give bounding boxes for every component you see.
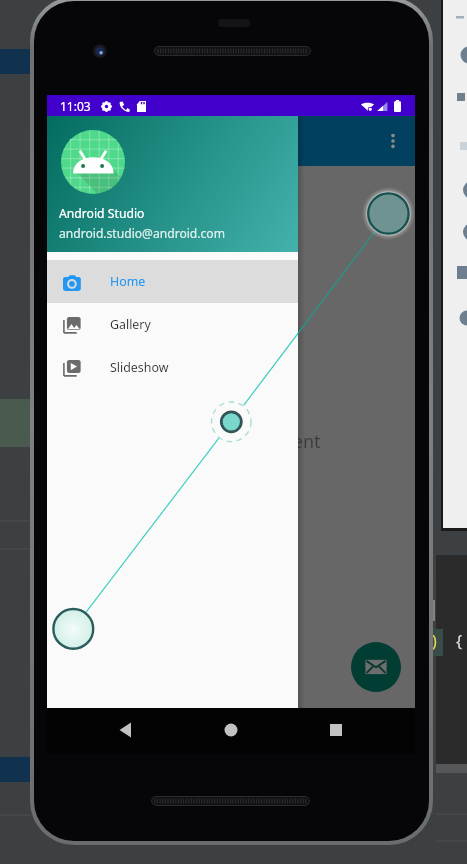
button[interactable]: Recents <box>319 713 353 747</box>
staticText: Home <box>110 273 146 290</box>
staticText: Hello blank fragment <box>142 429 321 454</box>
button[interactable]: Gallery <box>47 303 298 346</box>
button[interactable]: Slideshow <box>47 346 298 389</box>
button[interactable]: More options <box>378 126 408 156</box>
staticText: Android Studio <box>59 205 145 222</box>
staticText: { <box>456 630 463 652</box>
button[interactable]: Send email <box>351 642 401 692</box>
staticText: Gallery <box>110 316 151 333</box>
button[interactable]: Home <box>47 260 298 303</box>
staticText: 11:03 <box>60 98 91 114</box>
button[interactable]: Back <box>109 713 143 747</box>
staticText: android.studio@android.com <box>59 225 225 241</box>
staticText: Slideshow <box>110 359 169 376</box>
button[interactable]: Home <box>214 713 248 747</box>
staticText: ) <box>432 630 437 652</box>
